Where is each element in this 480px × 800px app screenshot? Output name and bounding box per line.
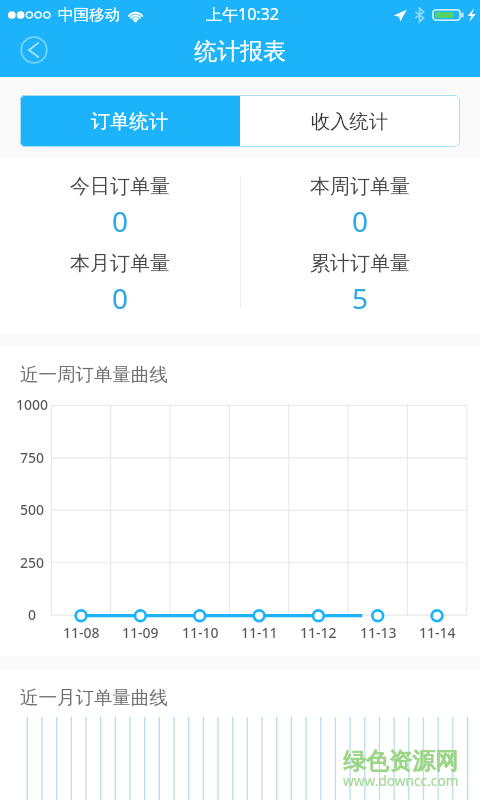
button[interactable]: 订单统计	[20, 95, 240, 147]
staticText: 500	[20, 500, 45, 519]
staticText: 累计订单量	[310, 251, 410, 276]
staticText: 0	[352, 202, 369, 240]
button[interactable]: 本周订单量	[240, 177, 480, 254]
staticText: 11-10	[182, 623, 219, 642]
staticText: 绿色资源网	[343, 747, 458, 776]
staticText: 11-11	[241, 623, 278, 642]
staticText: 中国移动	[58, 5, 120, 25]
staticText: 11-09	[122, 623, 159, 642]
staticText: 上午10:32	[206, 3, 279, 25]
staticText: 0	[112, 279, 129, 317]
staticText: 本周订单量	[310, 174, 410, 199]
staticText: 收入统计	[311, 109, 389, 133]
staticText: 250	[20, 553, 45, 572]
staticText: 订单统计	[91, 109, 169, 133]
button[interactable]: Back	[13, 29, 54, 70]
staticText: 5	[352, 279, 369, 317]
button[interactable]: 累计订单量	[240, 254, 480, 331]
button[interactable]: 收入统计	[240, 95, 460, 147]
staticText: 统计报表	[194, 37, 286, 66]
staticText: 1000	[16, 395, 49, 414]
staticText: 0	[112, 202, 129, 240]
staticText: 11-13	[360, 623, 397, 642]
staticText: 11-12	[300, 623, 337, 642]
staticText: 近一月订单量曲线	[20, 686, 168, 709]
staticText: 0	[28, 605, 37, 624]
staticText: 750	[20, 448, 45, 467]
button[interactable]: 本月订单量	[0, 254, 240, 331]
staticText: 本月订单量	[70, 251, 170, 276]
staticText: 今日订单量	[70, 174, 170, 199]
staticText: www.downcc.com	[343, 771, 459, 790]
staticText: 近一周订单量曲线	[20, 363, 168, 386]
button[interactable]: 今日订单量	[0, 177, 240, 254]
staticText: 11-08	[63, 623, 100, 642]
staticText: 11-14	[419, 623, 456, 642]
